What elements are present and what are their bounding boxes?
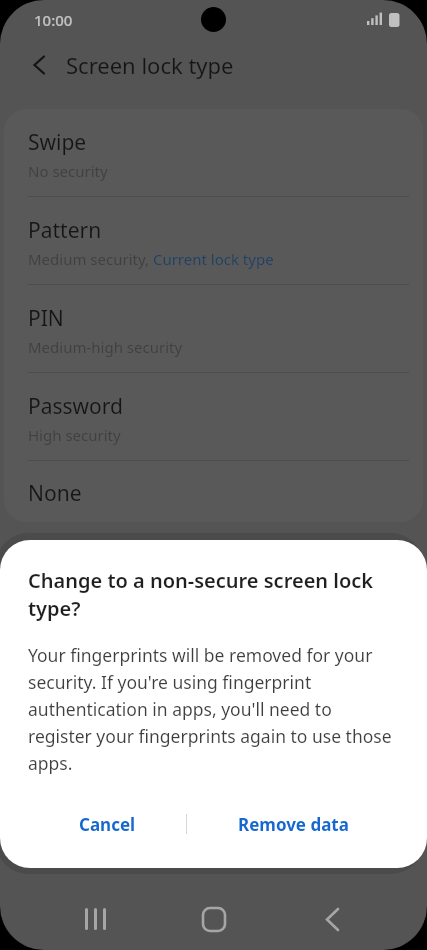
button[interactable] [18, 44, 60, 86]
button[interactable]: PIN [4, 285, 423, 372]
button[interactable] [60, 895, 160, 945]
button[interactable]: None [4, 461, 423, 522]
staticText: Change to a non-secure screen lock type? [28, 567, 374, 622]
button[interactable] [260, 895, 360, 945]
staticText: PIN [28, 304, 64, 333]
staticText: None [28, 479, 82, 508]
staticText: Password [28, 392, 123, 421]
staticText: High security [28, 425, 121, 445]
staticText: Your fingerprints will be removed for yo… [28, 643, 392, 775]
staticText: Cancel [79, 813, 136, 836]
staticText: Medium security, Current lock type [28, 249, 274, 269]
staticText: Remove data [238, 813, 349, 836]
staticText: No security [28, 161, 108, 181]
staticText: Pattern [28, 216, 102, 245]
staticText: Swipe [28, 128, 87, 157]
staticText: Screen lock type [66, 50, 234, 80]
button[interactable] [160, 895, 260, 945]
button[interactable]: Remove data [220, 803, 366, 845]
button[interactable]: Pattern [4, 197, 423, 284]
button[interactable]: Cancel [57, 803, 157, 845]
button[interactable]: Swipe [4, 109, 423, 196]
button[interactable]: Password [4, 373, 423, 460]
staticText: 10:00 [34, 10, 73, 30]
staticText: Medium-high security [28, 337, 183, 357]
